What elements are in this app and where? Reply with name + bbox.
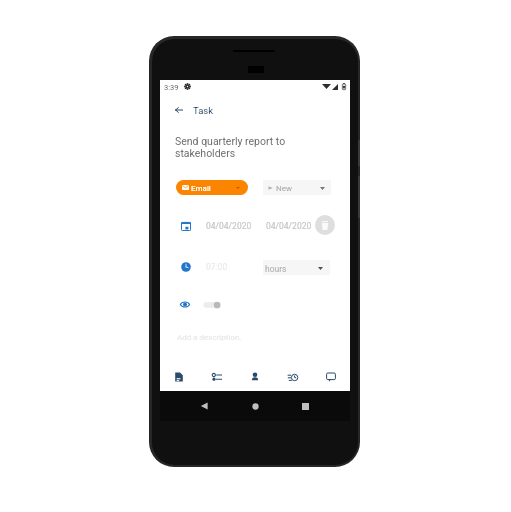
button[interactable]: Contacts: [236, 363, 274, 391]
button[interactable]: Home: [246, 397, 264, 415]
button[interactable]: Email: [176, 180, 248, 195]
staticText: New: [276, 184, 292, 193]
button[interactable]: Back: [172, 99, 214, 121]
button[interactable]: Toggle visibility: [203, 299, 221, 311]
button[interactable]: Comments: [312, 363, 350, 391]
staticText: 07:00: [206, 262, 228, 272]
staticText: 04/04/2020: [206, 221, 252, 231]
staticText: Task: [193, 105, 214, 116]
staticText: 04/04/2020: [266, 221, 312, 231]
button[interactable]: New: [263, 180, 331, 195]
button[interactable]: Notes: [160, 363, 198, 391]
staticText: 3:39: [164, 83, 179, 92]
button[interactable]: History: [274, 363, 312, 391]
button[interactable]: hours: [263, 260, 330, 275]
staticText: hours: [265, 264, 287, 274]
button[interactable]: Recents: [296, 397, 314, 415]
button[interactable]: Delete: [315, 215, 335, 235]
staticText: Send quarterly report to stakeholders: [175, 135, 286, 159]
button[interactable]: Back: [195, 397, 213, 415]
button[interactable]: Visibility: [178, 298, 190, 310]
button[interactable]: Checklist: [198, 363, 236, 391]
button[interactable]: Date: [181, 221, 191, 231]
staticText: Email: [191, 184, 211, 193]
other: Back: [172, 103, 186, 117]
button[interactable]: Time: [181, 262, 191, 272]
staticText: Add a description.: [177, 333, 242, 342]
